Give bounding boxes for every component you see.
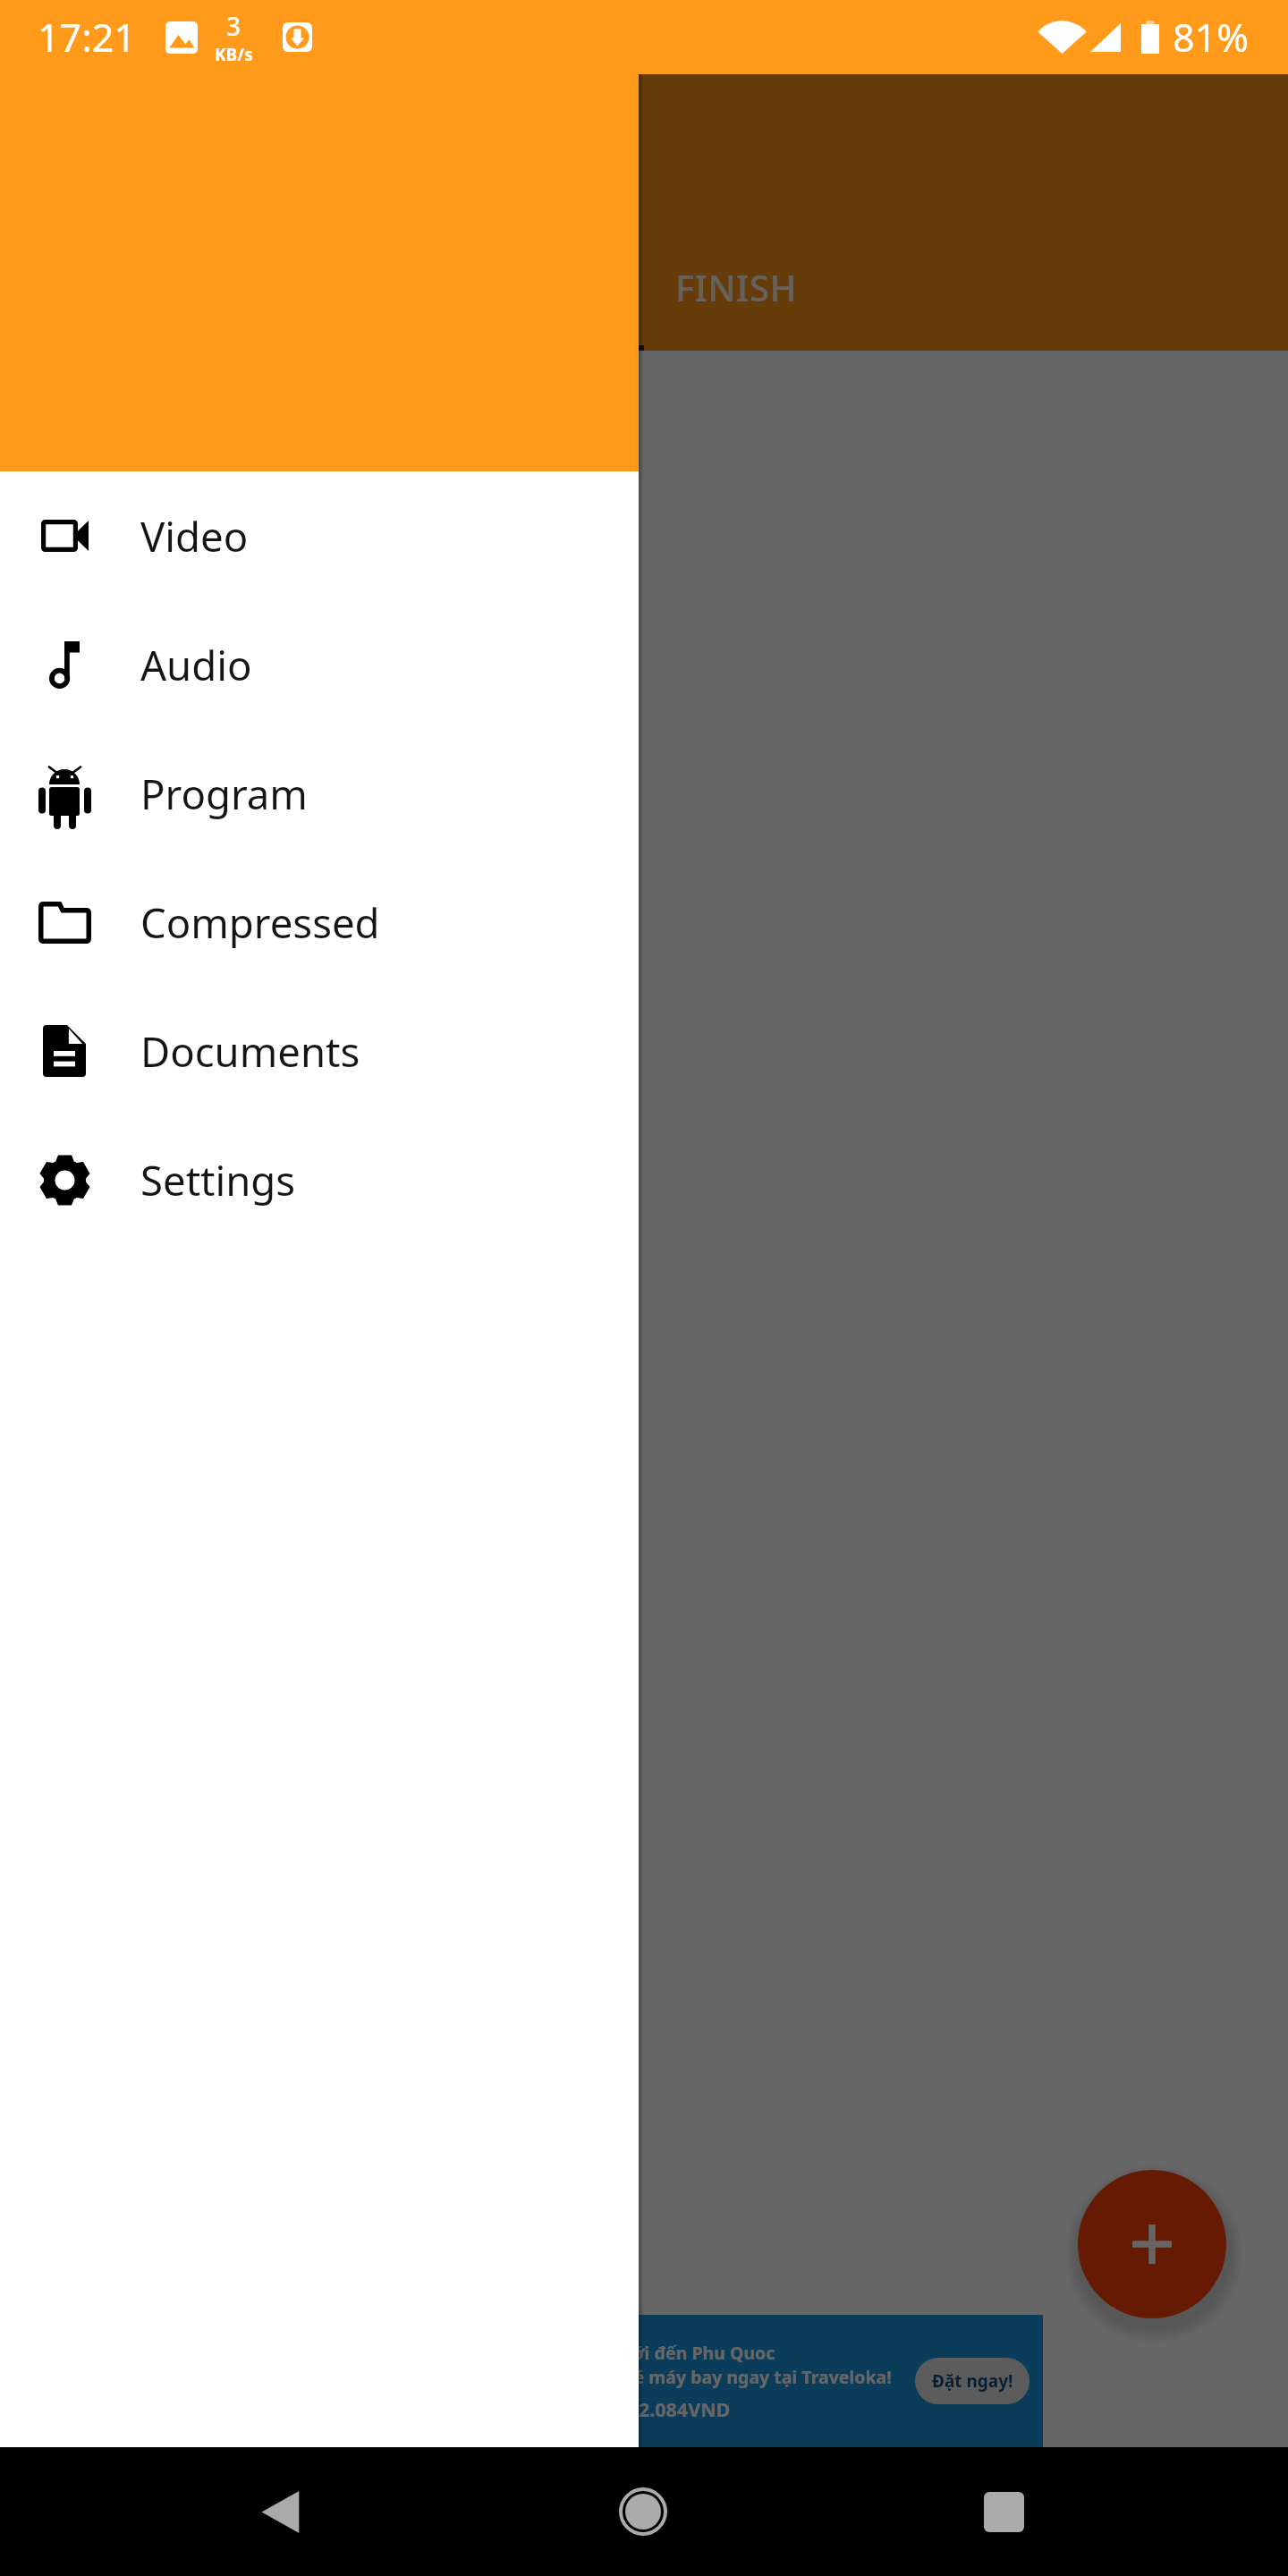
staticText: Đặt ngay!: [932, 2369, 1013, 2393]
staticText: FINISH: [675, 263, 797, 311]
staticText: 1.362.084VND: [600, 2396, 731, 2422]
button[interactable]: Compressed: [0, 858, 639, 987]
staticText: Video: [140, 508, 249, 563]
button[interactable]: Bay tới đến Phu Quoc: [196, 2315, 1043, 2447]
staticText: KB/s: [215, 43, 253, 66]
staticText: 3: [226, 9, 241, 43]
button[interactable]: Documents: [0, 987, 639, 1115]
button[interactable]: Recents: [950, 2458, 1057, 2565]
staticText: Documents: [140, 1023, 360, 1079]
staticText: Đặt vé máy bay ngay tại Traveloka!: [589, 2365, 892, 2389]
button[interactable]: Home: [589, 2458, 697, 2565]
button[interactable]: Back: [226, 2460, 334, 2567]
button[interactable]: Program: [0, 729, 639, 858]
button[interactable]: Settings: [0, 1115, 639, 1244]
staticText: Compressed: [140, 894, 380, 950]
staticText: Program: [140, 766, 308, 821]
staticText: Bay tới đến Phu Quoc: [589, 2341, 775, 2365]
button[interactable]: Audio: [0, 600, 639, 729]
button[interactable]: Add: [1078, 2170, 1226, 2318]
staticText: 17:21: [38, 11, 136, 64]
button[interactable]: Video: [0, 471, 639, 600]
staticText: Settings: [140, 1152, 296, 1207]
staticText: 81%: [1173, 11, 1249, 64]
staticText: Audio: [140, 637, 252, 692]
button[interactable]: Đặt ngay!: [915, 2358, 1030, 2404]
